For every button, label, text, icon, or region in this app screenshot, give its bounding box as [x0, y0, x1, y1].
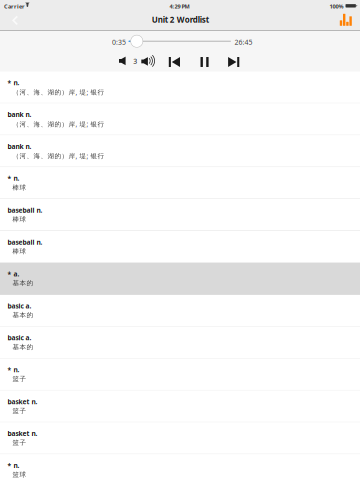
button[interactable]: bank n. — [0, 103, 360, 135]
staticText: basket n. — [7, 429, 37, 438]
staticText: 棒球 — [12, 183, 26, 192]
button[interactable]: * a. — [0, 263, 360, 295]
staticText: 基本的 — [12, 279, 33, 287]
staticText: 篮子 — [12, 439, 26, 447]
staticText: * n. — [7, 174, 19, 183]
button[interactable]: * n. — [0, 454, 360, 480]
staticText: 基本的 — [12, 311, 33, 319]
button[interactable]: basic a. — [0, 295, 360, 327]
staticText: Carrier — [4, 2, 25, 10]
staticText: 100% — [330, 2, 344, 10]
staticText: * a. — [7, 269, 19, 278]
staticText: baseball n. — [7, 237, 42, 247]
staticText: （河、海、湖的）岸, 堤; 银行 — [12, 120, 104, 128]
button[interactable]: basic a. — [0, 327, 360, 359]
staticText: basic a. — [7, 301, 31, 310]
button[interactable]: * n. — [0, 359, 360, 390]
button[interactable]: baseball n. — [0, 231, 360, 263]
button[interactable]: bank n. — [0, 135, 360, 167]
staticText: （河、海、湖的）岸, 堤; 银行 — [12, 151, 104, 160]
button[interactable]: * n. — [0, 167, 360, 199]
staticText: 26:45 — [234, 37, 252, 47]
button[interactable]: baseball n. — [0, 199, 360, 231]
staticText: 3 — [133, 56, 137, 66]
staticText: basic a. — [7, 333, 31, 342]
staticText: baseball n. — [7, 206, 42, 215]
staticText: * n. — [7, 365, 19, 374]
button[interactable]: Statistics — [333, 12, 360, 28]
button[interactable]: Pause — [194, 54, 215, 70]
button[interactable]: basket n. — [0, 390, 360, 422]
staticText: 4:29 PM — [169, 2, 189, 10]
button[interactable]: Volume down — [116, 55, 129, 67]
staticText: bank n. — [7, 142, 31, 151]
button[interactable]: Volume up — [138, 54, 159, 68]
staticText: 棒球 — [12, 247, 26, 255]
staticText: Unit 2 Wordlist — [152, 14, 209, 25]
button[interactable]: Next track — [224, 54, 243, 70]
staticText: * n. — [7, 461, 19, 470]
staticText: bank n. — [7, 110, 31, 119]
button[interactable]: Previous track — [165, 54, 184, 70]
button[interactable]: * n. — [0, 71, 360, 103]
staticText: 基本的 — [12, 343, 33, 351]
staticText: 篮子 — [12, 407, 26, 415]
staticText: 0:35 — [112, 37, 126, 47]
button[interactable]: basket n. — [0, 422, 360, 454]
staticText: 篮子 — [12, 375, 26, 383]
staticText: basket n. — [7, 397, 37, 406]
staticText: 棒球 — [12, 215, 26, 223]
staticText: 篮球 — [12, 470, 26, 479]
staticText: （河、海、湖的）岸, 堤; 银行 — [12, 88, 104, 97]
staticText: * n. — [7, 78, 19, 87]
